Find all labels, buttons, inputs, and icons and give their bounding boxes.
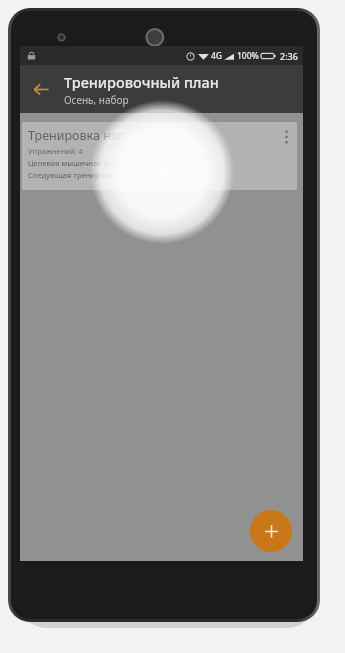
button[interactable]: Тренировка ног — [22, 122, 297, 190]
staticText: Тренировочный план — [64, 72, 219, 92]
staticText: Целевая мышечная группа: Мышцы ног — [28, 158, 177, 168]
button[interactable]: Add workout — [250, 510, 292, 552]
staticText: Следующая тренировка: 11.10.2017, 17:30 — [28, 170, 183, 180]
staticText: Тренировка ног — [28, 127, 124, 144]
button[interactable]: More options — [275, 122, 297, 152]
staticText: 4G — [211, 50, 223, 62]
staticText: 2:36 — [280, 50, 298, 62]
staticText: 100% — [237, 50, 259, 62]
button[interactable]: Back — [20, 68, 62, 110]
staticText: Осень, набор — [64, 93, 129, 107]
staticText: Упражнений: 4 — [28, 146, 83, 156]
